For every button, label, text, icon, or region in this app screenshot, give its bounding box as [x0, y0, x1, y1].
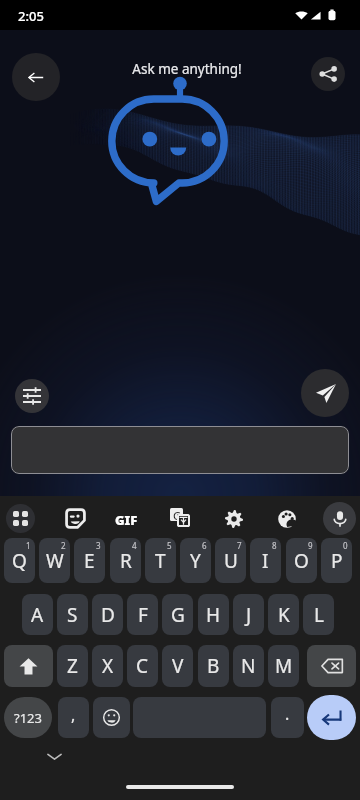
staticText: A [31, 602, 44, 628]
staticText: L [314, 602, 324, 628]
staticText: R [120, 548, 132, 574]
staticText: P [331, 548, 343, 574]
button[interactable]: Z [57, 645, 88, 687]
button[interactable]: Emoji [93, 697, 130, 738]
button[interactable] [11, 426, 349, 474]
button[interactable]: T [145, 538, 176, 583]
button[interactable]: N [233, 645, 264, 687]
staticText: C [136, 653, 149, 679]
staticText: G [173, 508, 181, 521]
staticText: 5 [167, 540, 172, 551]
button[interactable]: Backspace [307, 645, 356, 687]
staticText: 2:05 [18, 7, 44, 25]
button[interactable]: . [271, 697, 304, 738]
staticText: Q [12, 548, 27, 574]
staticText: 0 [343, 540, 348, 551]
staticText: 1 [26, 540, 31, 551]
button[interactable]: H [198, 594, 229, 635]
staticText: M [275, 653, 293, 679]
button[interactable]: Q [4, 538, 35, 583]
staticText: I [262, 548, 269, 574]
staticText: 6 [202, 540, 207, 551]
button[interactable]: Share [311, 57, 345, 91]
staticText: N [241, 653, 256, 679]
button[interactable]: G [162, 594, 193, 635]
staticText: U [224, 548, 238, 574]
staticText: O [294, 548, 309, 574]
button[interactable]: P [321, 538, 352, 583]
staticText: J [246, 602, 252, 628]
staticText: 2 [61, 540, 66, 551]
button[interactable]: Enter [307, 695, 356, 740]
button[interactable]: W [39, 538, 70, 583]
button[interactable]: ?123 [4, 697, 52, 738]
button[interactable]: Apps [6, 504, 35, 533]
button[interactable]: E [74, 538, 105, 583]
staticText: . [285, 703, 290, 725]
staticText: GIF [115, 511, 138, 529]
button[interactable]: Back [12, 53, 60, 101]
button[interactable]: A [22, 594, 53, 635]
staticText: 4 [132, 540, 137, 551]
button[interactable]: V [162, 645, 193, 687]
button[interactable]: Space [133, 697, 266, 738]
button[interactable]: Translate [167, 505, 193, 531]
button[interactable]: Settings [221, 506, 246, 531]
button[interactable]: F [127, 594, 158, 635]
staticText: ?123 [14, 709, 42, 727]
button[interactable]: C [127, 645, 158, 687]
staticText: K [278, 602, 290, 628]
button[interactable]: X [92, 645, 123, 687]
staticText: F [138, 602, 148, 628]
staticText: W [46, 548, 64, 574]
button[interactable]: K [268, 594, 299, 635]
button[interactable]: Voice input [323, 502, 356, 535]
staticText: 9 [308, 540, 313, 551]
staticText: G [171, 602, 185, 628]
button[interactable]: B [198, 645, 229, 687]
staticText: Y [190, 548, 201, 574]
button[interactable]: , [58, 697, 89, 738]
button[interactable]: U [215, 538, 246, 583]
button[interactable]: Send [301, 369, 349, 417]
button[interactable]: Hide keyboard [40, 742, 68, 770]
staticText: V [172, 653, 184, 679]
button[interactable]: GIF [112, 506, 140, 534]
staticText: 7 [237, 540, 242, 551]
staticText: X [102, 653, 114, 679]
button[interactable]: Shift [4, 645, 53, 687]
button[interactable]: S [57, 594, 88, 635]
button[interactable]: R [110, 538, 141, 583]
staticText: H [206, 602, 221, 628]
button[interactable]: Y [180, 538, 211, 583]
staticText: T [155, 548, 166, 574]
button[interactable]: L [303, 594, 334, 635]
staticText: 8 [272, 540, 277, 551]
button[interactable]: Theme [274, 506, 299, 531]
staticText: B [207, 653, 220, 679]
button[interactable]: J [233, 594, 264, 635]
button[interactable]: Options [15, 379, 49, 413]
button[interactable]: M [268, 645, 299, 687]
staticText: , [71, 704, 76, 726]
button[interactable]: Stickers [63, 506, 88, 531]
staticText: 3 [96, 540, 101, 551]
staticText: D [101, 602, 115, 628]
button[interactable]: D [92, 594, 123, 635]
button[interactable]: I [250, 538, 281, 583]
staticText: Z [67, 653, 78, 679]
staticText: Ask me anything! [77, 60, 297, 78]
staticText: S [67, 602, 78, 628]
button[interactable]: O [286, 538, 317, 583]
staticText: E [84, 548, 95, 574]
